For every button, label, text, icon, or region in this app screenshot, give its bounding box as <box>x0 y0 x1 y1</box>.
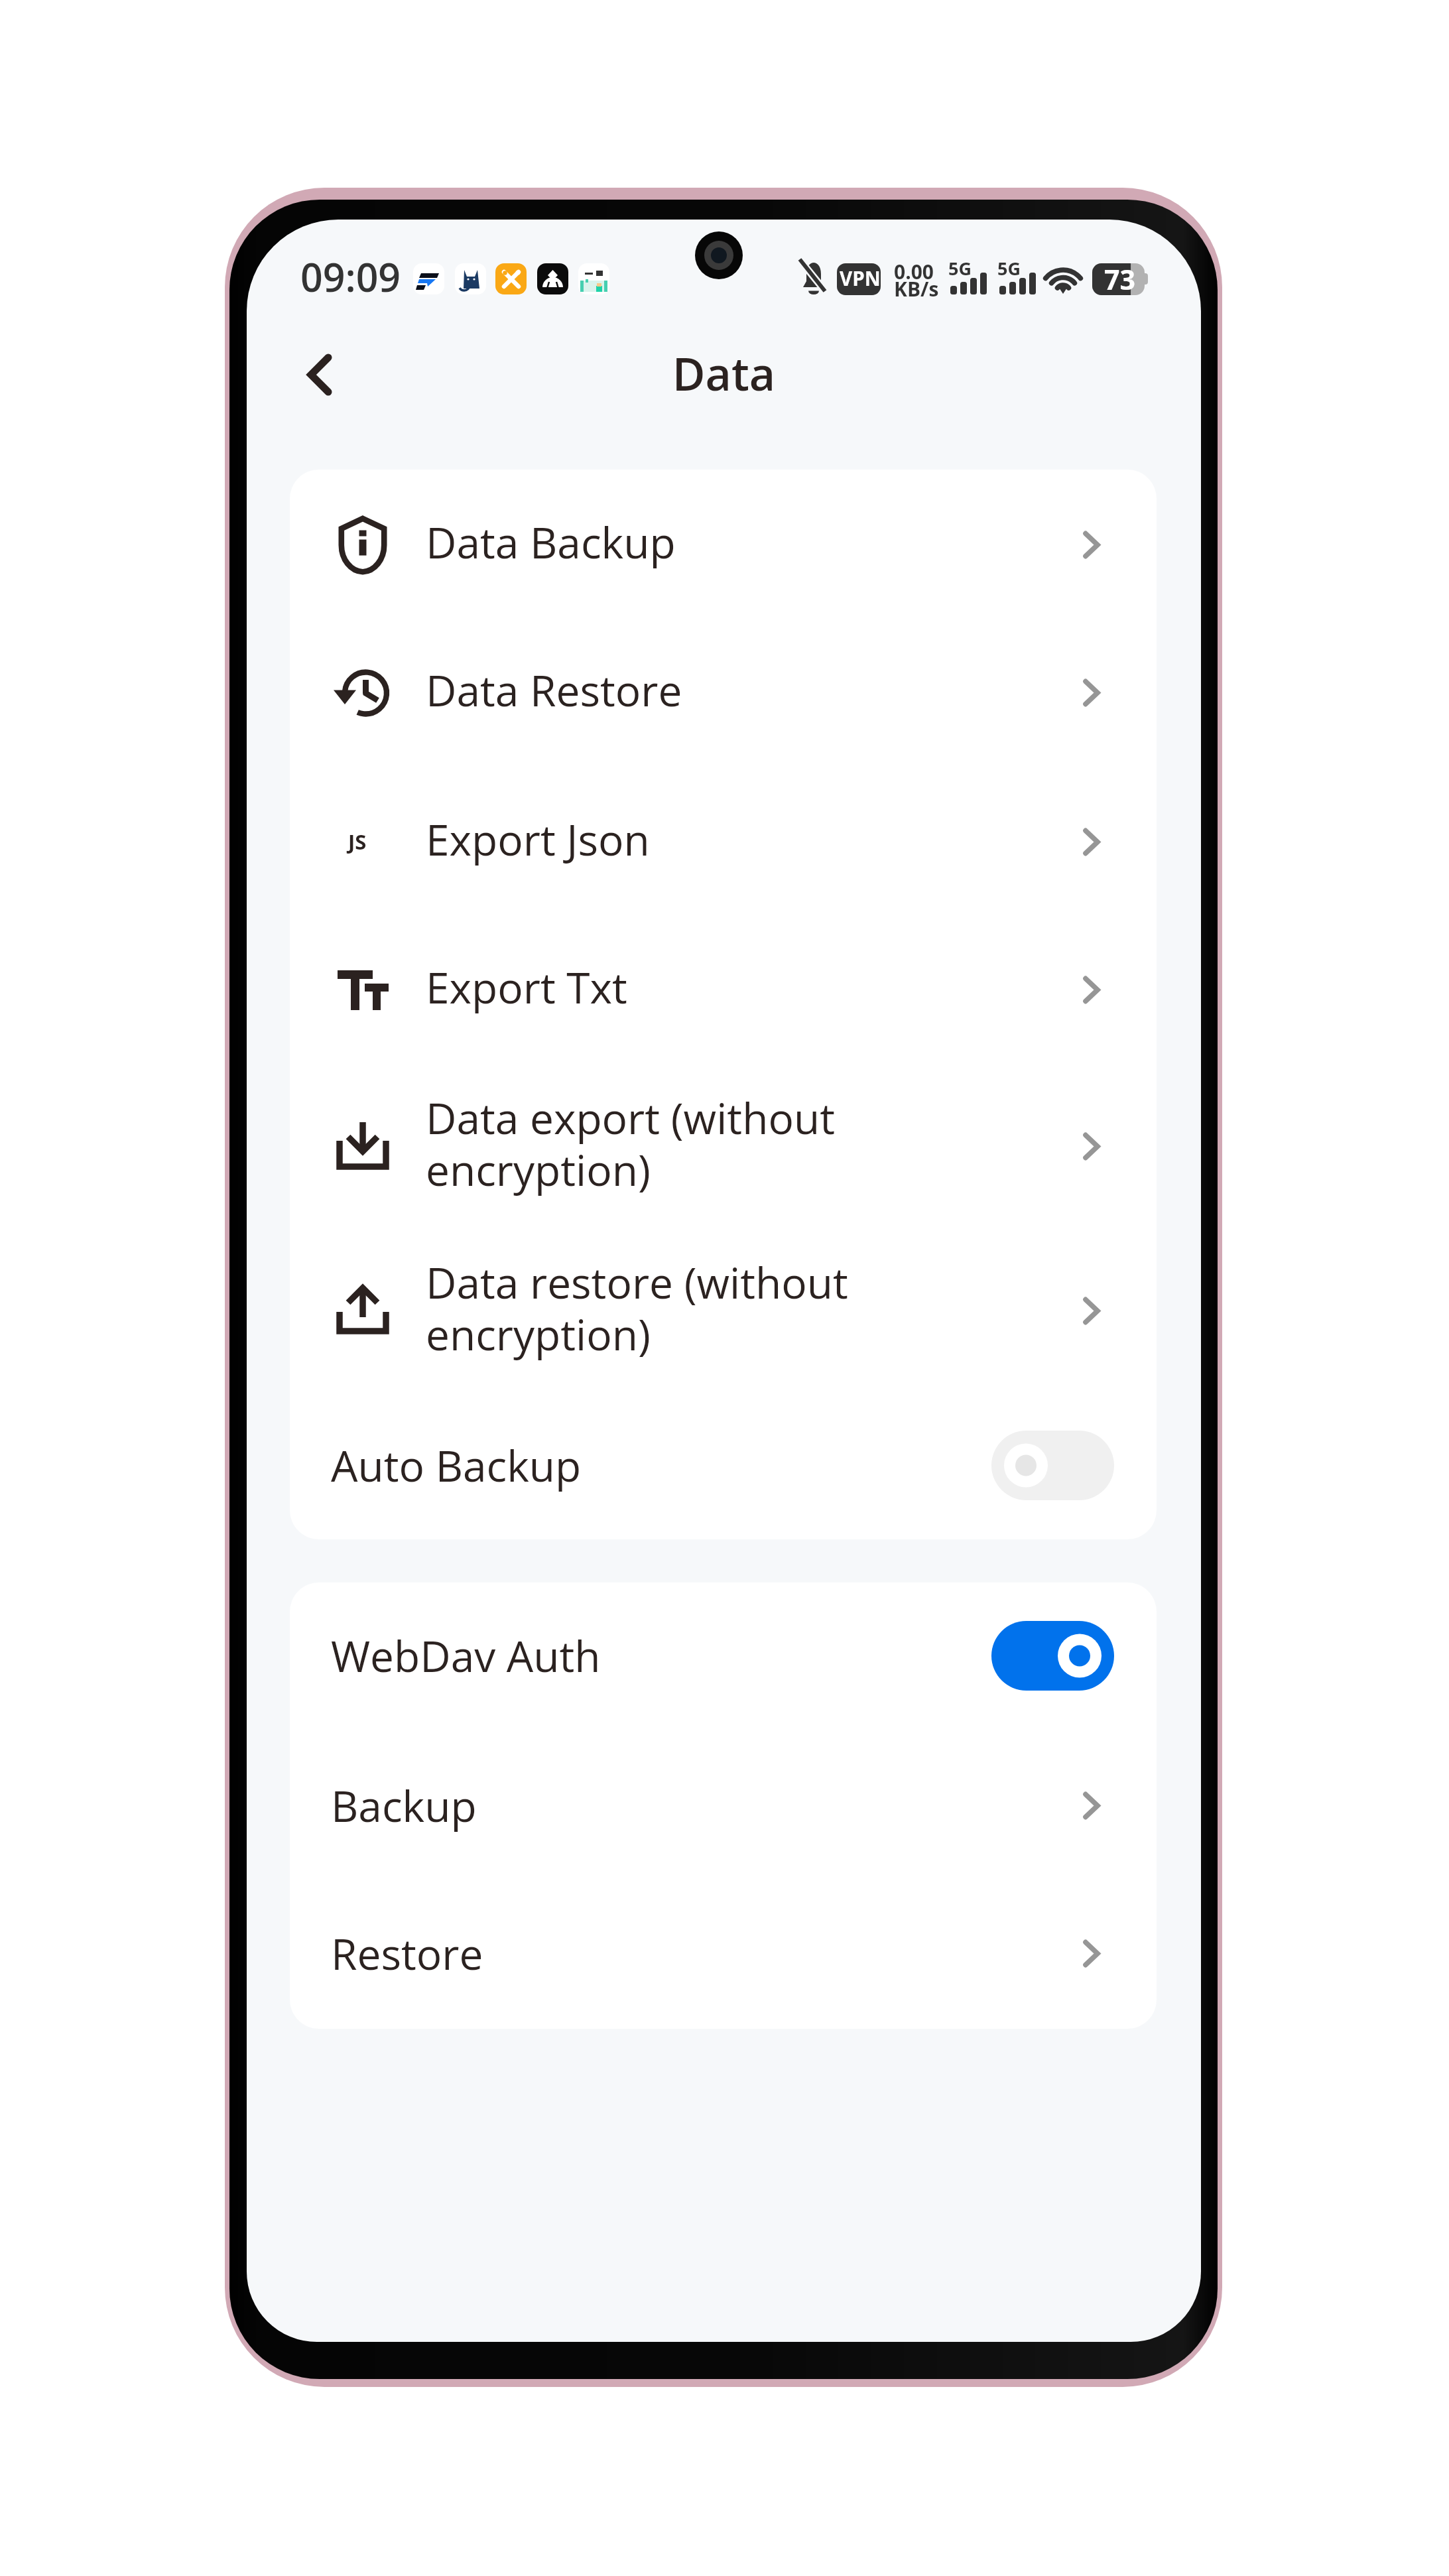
staticText: Export Json <box>426 810 650 868</box>
staticText: Auto Backup <box>331 1437 582 1494</box>
button[interactable]: Data Restore <box>290 619 1157 767</box>
staticText: Export Txt <box>426 958 627 1016</box>
staticText: WebDav Auth <box>331 1627 601 1685</box>
button[interactable]: Export Txt <box>290 916 1157 1064</box>
button[interactable]: Restore <box>290 1880 1157 2028</box>
staticText: 73 <box>1104 261 1135 298</box>
staticText: Backup <box>331 1777 477 1835</box>
button[interactable]: JS <box>290 768 1157 916</box>
staticText: Data Backup <box>426 513 676 571</box>
staticText: Data restore (without encryption) <box>426 1254 848 1363</box>
button[interactable]: Data export (without encryption) <box>290 1064 1157 1228</box>
staticText: VPN <box>840 265 881 291</box>
staticText: KB/s <box>894 275 939 302</box>
staticText: Data <box>247 342 1201 404</box>
button[interactable]: WebDav Auth <box>290 1582 1157 1730</box>
staticText: Restore <box>331 1925 483 1982</box>
button[interactable]: Data Backup <box>290 471 1157 619</box>
button[interactable]: Back <box>281 336 359 414</box>
button[interactable]: Data restore (without encryption) <box>290 1228 1157 1393</box>
staticText: 5G <box>997 256 1021 281</box>
button[interactable]: Auto Backup <box>290 1391 1157 1539</box>
staticText: Data export (without encryption) <box>426 1089 835 1198</box>
staticText: 5G <box>948 256 972 281</box>
staticText: 09:09 <box>300 250 401 303</box>
staticText: JS <box>348 828 367 856</box>
staticText: 0.00 <box>894 258 934 285</box>
button[interactable]: Backup <box>290 1732 1157 1880</box>
staticText: Data Restore <box>426 661 682 719</box>
